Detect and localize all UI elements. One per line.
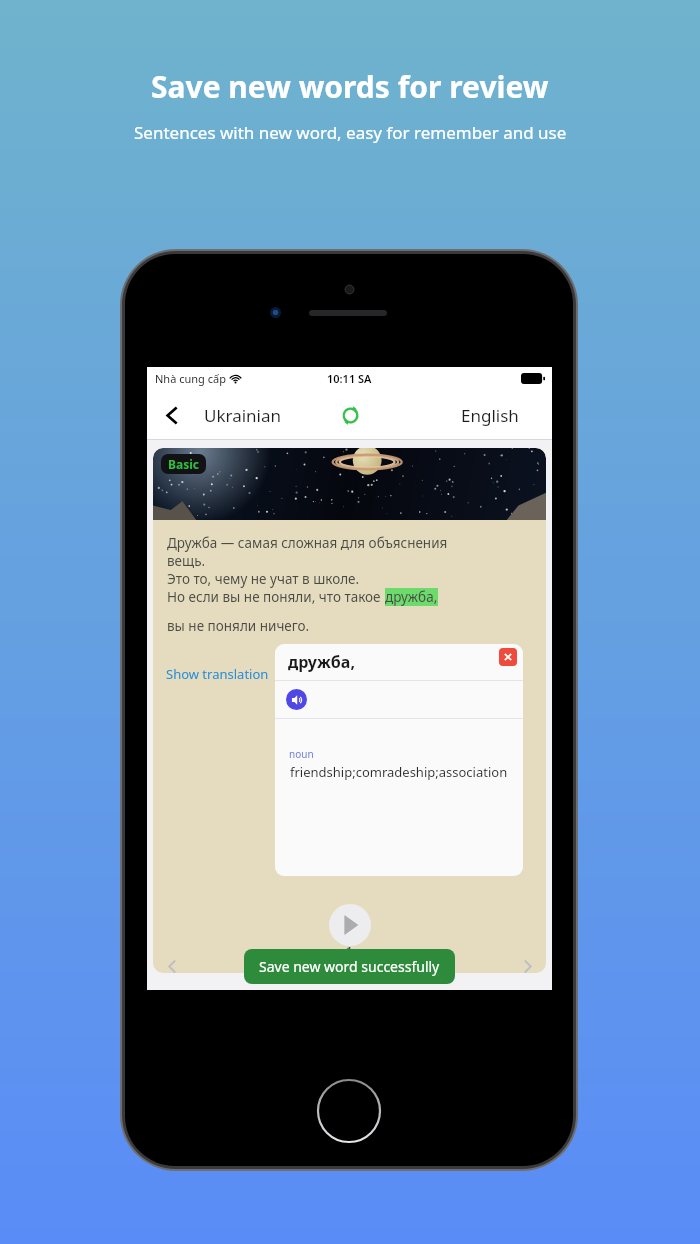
staticText: Это то, чему не учат в школе. (167, 570, 360, 588)
staticText: дружба, (288, 651, 355, 673)
button[interactable]: Save new word successfully (244, 949, 455, 984)
button[interactable]: Previous (157, 951, 187, 981)
staticText: дружба, (385, 588, 438, 606)
button[interactable]: Ukrainian (204, 404, 282, 427)
button[interactable]: Show translation (166, 665, 269, 683)
button[interactable]: Back (153, 396, 191, 434)
button[interactable]: Play (329, 904, 371, 946)
staticText: 10:11 SA (327, 371, 372, 386)
button[interactable]: English (461, 404, 519, 427)
staticText: Save new word successfully (259, 957, 440, 976)
staticText: вещь. (167, 552, 206, 570)
staticText: Но если вы не поняли, что такое (167, 588, 385, 606)
staticText: 1 (345, 941, 354, 961)
staticText: Дружба — самая сложная для объяснения (167, 534, 448, 552)
button[interactable]: Swap languages (332, 397, 368, 433)
staticText: Save new words for review (151, 66, 549, 107)
staticText: Nhà cung cấp (155, 371, 226, 386)
staticText: Sentences with new word, easy for rememb… (134, 121, 567, 144)
button[interactable]: Close (499, 648, 517, 666)
staticText: вы не поняли ничего. (167, 617, 310, 635)
staticText: Basic (168, 456, 199, 472)
button[interactable]: Next (512, 951, 542, 981)
staticText: friendship;comradeship;association (290, 763, 508, 781)
button[interactable]: Pronounce (286, 689, 307, 710)
staticText: noun (289, 747, 314, 761)
